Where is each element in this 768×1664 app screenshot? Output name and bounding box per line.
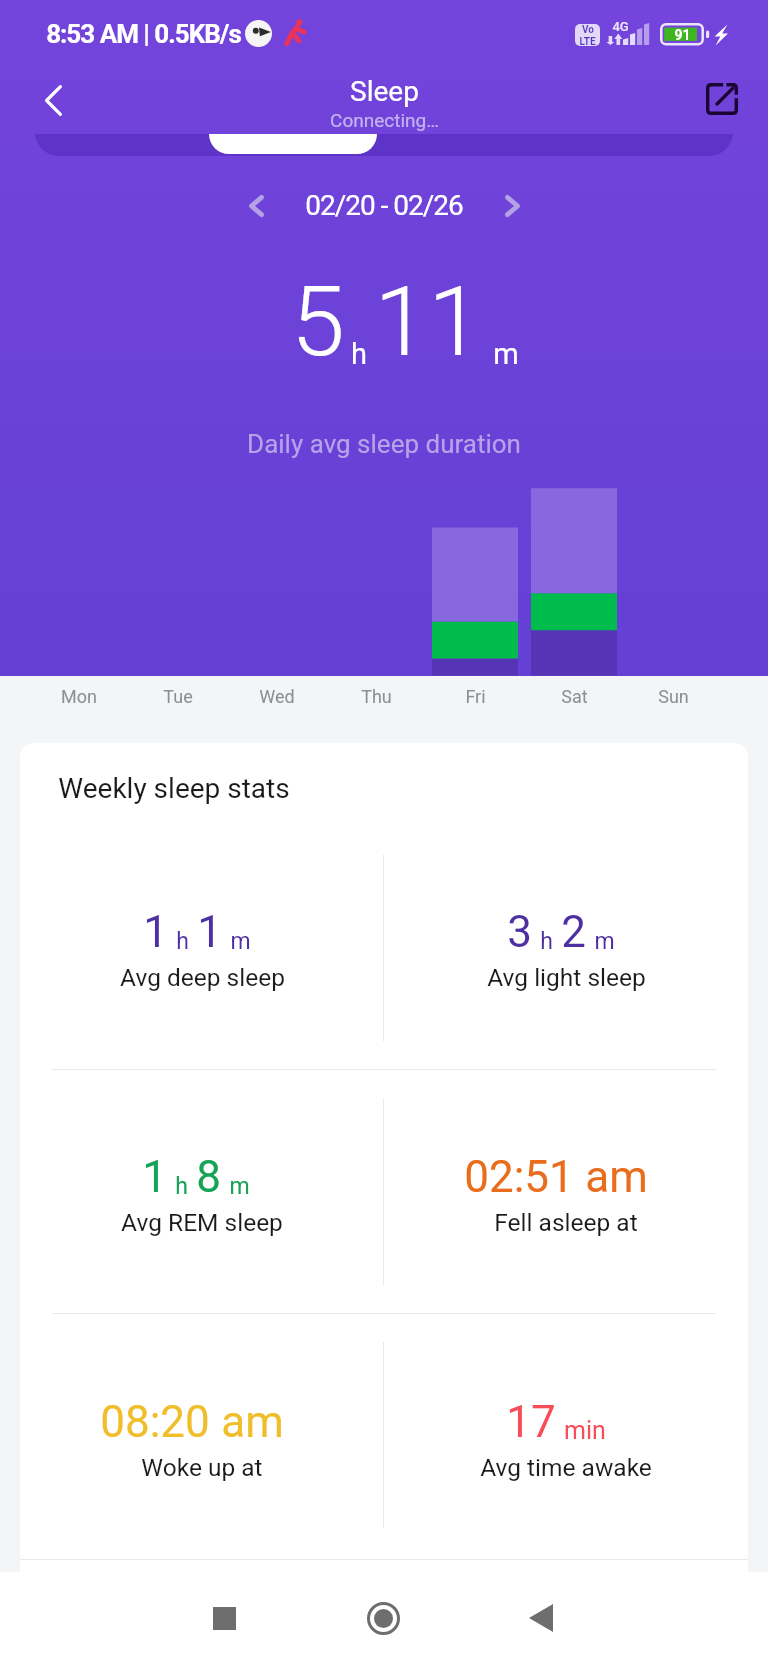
staticText: Sat [561,686,588,707]
staticText: h [540,928,553,955]
staticText: Sleep [350,75,419,108]
staticText: Vo [582,24,594,36]
button[interactable]: 1 [20,848,384,978]
staticText: Fri [465,686,486,707]
staticText: m [229,1173,250,1200]
button[interactable]: Back [18,67,88,133]
staticText: 11 [374,265,482,379]
staticText: Connecting… [330,109,439,131]
staticText: Avg deep sleep [120,963,285,992]
staticText: 2 [561,906,586,958]
button[interactable]: Next week [484,178,540,234]
staticText: Avg REM sleep [121,1208,283,1237]
staticText: Sun [658,686,689,707]
staticText: 02:51 [464,1151,574,1203]
staticText: 1 [142,1151,167,1203]
staticText: m [594,928,615,955]
button[interactable]: 02:51 [384,1093,748,1223]
staticText: Avg time awake [480,1453,652,1482]
button[interactable]: Back [495,1572,587,1664]
staticText: min [564,1416,606,1445]
button[interactable]: Recent apps [178,1572,270,1664]
staticText: Weekly sleep stats [58,772,290,805]
staticText: Mon [61,686,97,707]
staticText: Tue [163,686,193,707]
button[interactable]: 3 [384,848,748,978]
staticText: LTE [579,36,596,46]
button[interactable]: 08:20 [20,1338,384,1468]
staticText: m [493,337,519,371]
button[interactable]: Previous week [228,178,284,234]
staticText: Wed [259,686,295,707]
staticText: 4G [612,19,629,34]
staticText: Avg light sleep [487,963,646,992]
staticText: h [351,337,367,371]
staticText: 3 [507,906,532,958]
staticText: Thu [361,686,392,707]
staticText: Daily avg sleep duration [247,429,521,459]
staticText: 1 [197,906,222,958]
staticText: Woke up at [141,1453,263,1482]
staticText: m [230,928,251,955]
staticText: am [585,1151,648,1203]
staticText: 08:20 [100,1396,210,1448]
button[interactable]: 1 [20,1093,384,1223]
staticText: 02/20 - 02/26 [305,189,463,222]
staticText: 8 [196,1151,221,1203]
button[interactable]: 17 [384,1338,748,1468]
staticText: 1 [143,906,168,958]
staticText: 91 [674,27,691,43]
button[interactable]: Open externally [687,66,757,132]
staticText: h [175,1173,188,1200]
staticText: Fell asleep at [494,1208,638,1237]
button[interactable]: Home [337,1572,429,1664]
staticText: 8:53 AM | 0.5KB/s [46,19,241,49]
button[interactable] [209,134,377,158]
staticText: h [176,928,189,955]
staticText: 17 [506,1396,556,1448]
staticText: 5 [291,265,345,379]
staticText: am [221,1396,284,1448]
